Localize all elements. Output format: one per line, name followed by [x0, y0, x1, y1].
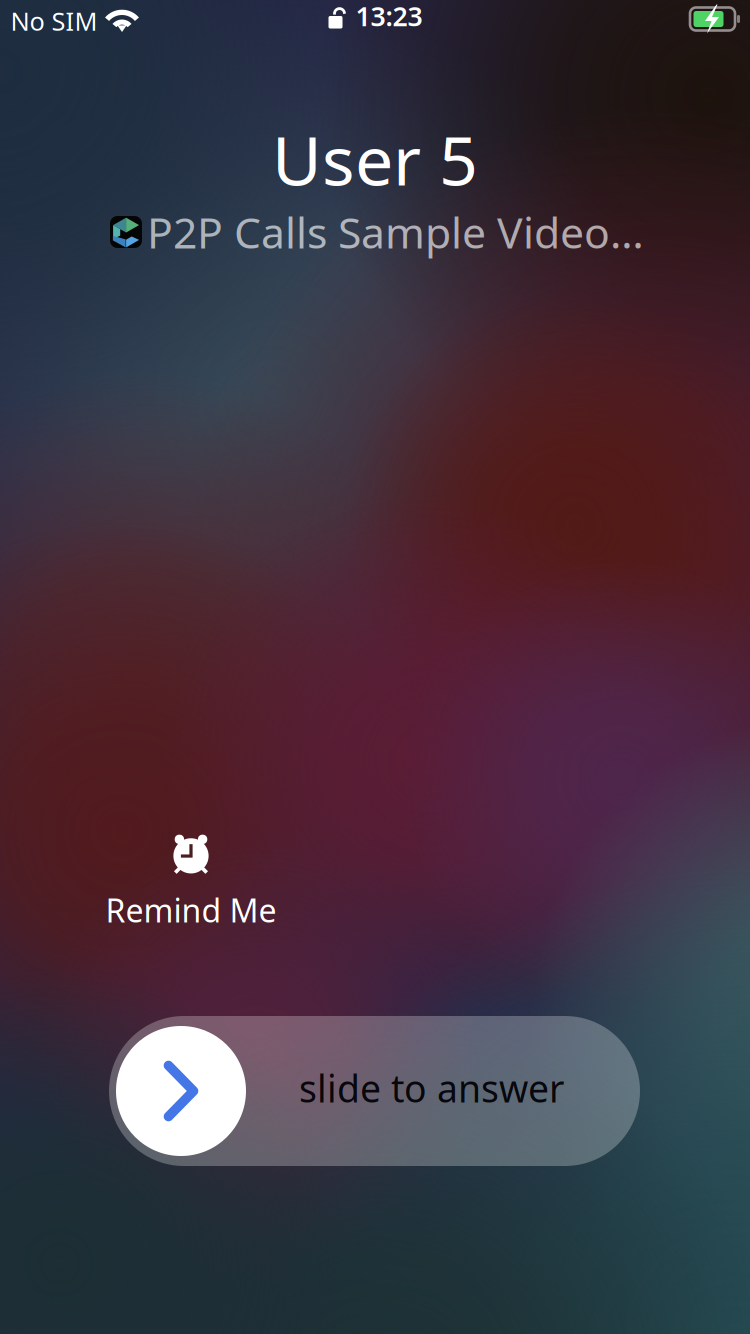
button[interactable]: Remind Me: [91, 835, 291, 931]
staticText: P2P Calls Sample Video…: [147, 204, 644, 260]
staticText: 13:23: [355, 0, 422, 34]
staticText: No SIM: [10, 4, 97, 38]
staticText: User 5: [272, 114, 478, 204]
staticText: slide to answer: [299, 1063, 564, 1113]
staticText: Remind Me: [105, 889, 276, 931]
button[interactable]: slide to answer: [109, 1016, 640, 1166]
